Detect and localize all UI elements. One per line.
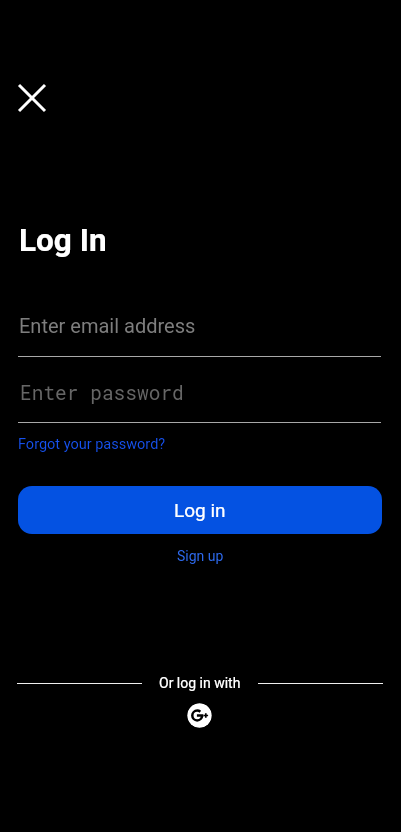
staticText: Enter password <box>20 380 184 406</box>
staticText: Log In <box>19 222 107 259</box>
button[interactable]: Log in <box>18 486 382 534</box>
staticText: Or log in with <box>159 675 241 691</box>
staticText: Enter email address <box>19 314 196 337</box>
button[interactable]: Forgot your password? <box>18 436 166 453</box>
staticText: Log in <box>174 499 226 521</box>
button[interactable] <box>187 703 212 728</box>
button[interactable]: Sign up <box>177 548 224 564</box>
button[interactable] <box>10 76 54 120</box>
